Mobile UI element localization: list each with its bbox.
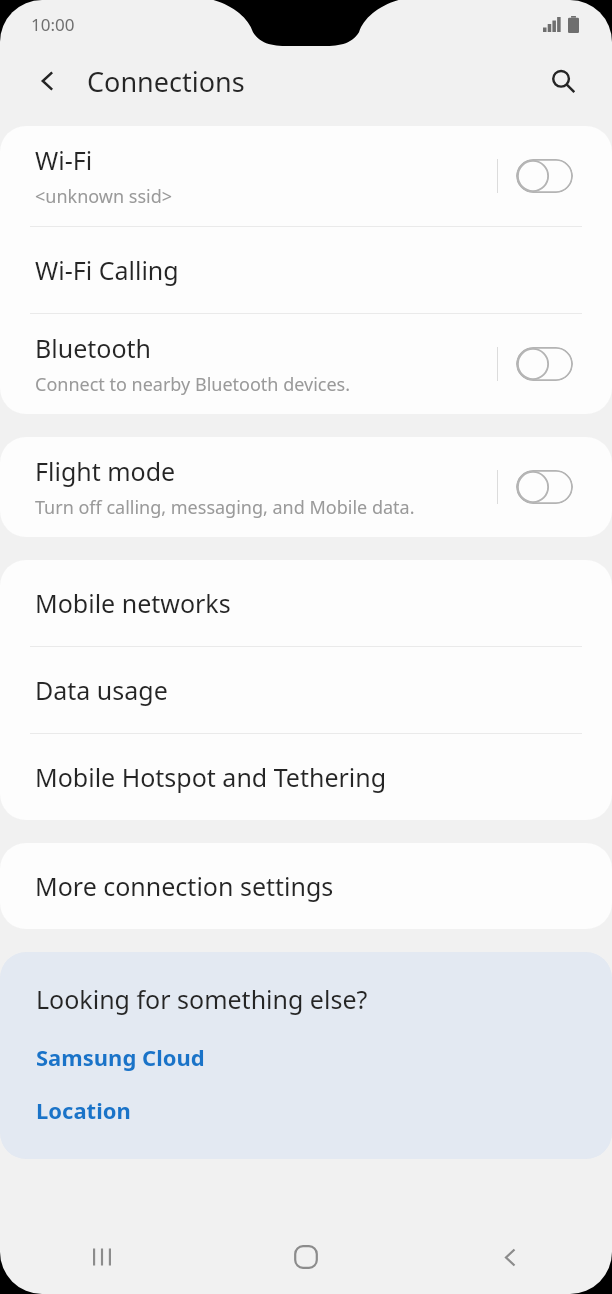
button[interactable]: Toggle	[516, 470, 573, 504]
button[interactable]: Search	[537, 55, 589, 107]
button[interactable]: Toggle	[516, 159, 573, 193]
button[interactable]: Mobile Hotspot and Tethering	[0, 734, 612, 820]
staticText: Connections	[87, 63, 245, 100]
staticText: Bluetooth	[35, 331, 152, 365]
button[interactable]: Samsung Cloud	[36, 1042, 205, 1072]
staticText: Wi-Fi Calling	[35, 253, 179, 287]
staticText: Mobile Hotspot and Tethering	[35, 760, 387, 794]
button[interactable]: Toggle	[516, 347, 573, 381]
staticText: 10:00	[31, 13, 75, 36]
button[interactable]: More connection settings	[0, 843, 612, 929]
button[interactable]: Recents	[0, 1220, 204, 1294]
button[interactable]: Back	[22, 55, 74, 107]
button[interactable]: Bluetooth	[0, 314, 612, 414]
button[interactable]: Data usage	[0, 647, 612, 733]
staticText: Wi-Fi	[35, 143, 93, 177]
button[interactable]: Location	[36, 1095, 131, 1125]
button[interactable]: Flight mode	[0, 437, 612, 537]
staticText: Looking for something else?	[36, 982, 368, 1016]
staticText: Connect to nearby Bluetooth devices.	[35, 372, 351, 397]
button[interactable]: Mobile networks	[0, 560, 612, 646]
staticText: Flight mode	[35, 454, 176, 488]
staticText: More connection settings	[35, 869, 334, 903]
staticText: Mobile networks	[35, 586, 231, 620]
button[interactable]: Wi-Fi Calling	[0, 227, 612, 313]
button[interactable]: Back	[408, 1220, 612, 1294]
button[interactable]: Wi-Fi	[0, 126, 612, 226]
staticText: Turn off calling, messaging, and Mobile …	[35, 495, 415, 520]
button[interactable]: Home	[204, 1220, 408, 1294]
staticText: Location	[36, 1095, 131, 1125]
staticText: <unknown ssid>	[35, 184, 173, 209]
staticText: Data usage	[35, 673, 168, 707]
staticText: Samsung Cloud	[36, 1042, 205, 1072]
